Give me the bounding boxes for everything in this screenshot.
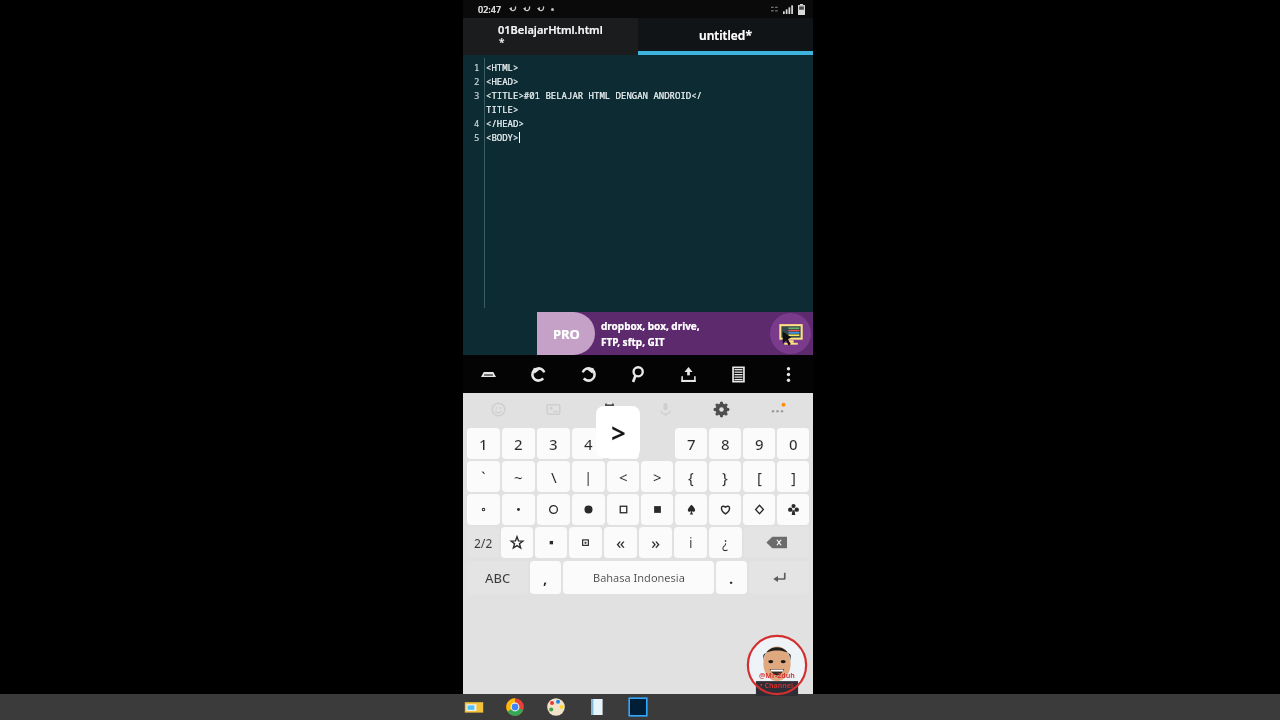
button[interactable]: Undo (513, 355, 563, 393)
button[interactable]: 01BelajarHtml.html (463, 18, 638, 55)
button[interactable]: 9 (743, 428, 775, 459)
button[interactable]: [ (743, 461, 775, 492)
staticText: , (543, 568, 548, 588)
staticText: 2 (474, 75, 480, 87)
button[interactable]: Save (663, 355, 713, 393)
button[interactable]: Symbol raq (639, 527, 672, 558)
button[interactable]: Symbol (743, 494, 775, 525)
staticText: @Mr-2duh (759, 671, 795, 681)
staticText: 2/2 (474, 535, 493, 551)
button[interactable]: ] (777, 461, 809, 492)
button[interactable]: Symbol sq2 (569, 527, 602, 558)
button[interactable]: } (709, 461, 741, 492)
button[interactable]: Symbol laq (604, 527, 637, 558)
button[interactable]: Hide keyboard (463, 355, 513, 393)
button[interactable]: . (716, 561, 747, 594)
button[interactable]: | (572, 461, 605, 492)
staticText: 8 (721, 434, 730, 454)
button[interactable]: PRO (537, 312, 813, 355)
staticText: 0 (789, 434, 798, 454)
button[interactable]: Symbol (675, 494, 707, 525)
button[interactable]: ` (467, 461, 500, 492)
button[interactable]: Symbol (607, 494, 639, 525)
button[interactable]: > (641, 461, 673, 492)
staticText: • Channel (760, 681, 794, 691)
button[interactable]: Symbol (709, 494, 741, 525)
staticText: 3 (549, 434, 558, 454)
button[interactable]: Bahasa Indonesia (563, 561, 714, 594)
staticText: 1 (474, 61, 480, 73)
button[interactable]: More options (749, 393, 805, 425)
button[interactable]: 0 (777, 428, 809, 459)
button[interactable]: untitled* (638, 18, 813, 55)
button[interactable]: 3 (537, 428, 570, 459)
staticText: </HEAD> (486, 117, 524, 129)
staticText: <TITLE>#01 BELAJAR HTML DENGAN ANDROID</ (486, 89, 703, 101)
button[interactable]: Symbol star (501, 527, 533, 558)
staticText: PRO (553, 325, 580, 343)
button[interactable]: 8 (709, 428, 741, 459)
button[interactable]: Symbol (777, 494, 809, 525)
staticText: i (689, 533, 693, 552)
staticText: 01BelajarHtml.html (498, 22, 603, 37)
staticText: <HTML> (486, 61, 519, 73)
staticText: } (722, 467, 728, 487)
button[interactable]: < (607, 461, 639, 492)
staticText: < (619, 467, 628, 487)
button[interactable]: Enter (749, 561, 809, 594)
button[interactable]: 2 (502, 428, 535, 459)
button[interactable]: 1 (467, 428, 500, 459)
button[interactable]: Photoshop (628, 697, 648, 717)
staticText: 02:47 (478, 3, 502, 15)
staticText: ¿ (722, 533, 729, 552)
button[interactable]: ABC (467, 561, 528, 594)
button[interactable]: Symbol i (674, 527, 707, 558)
button[interactable]: File Explorer (464, 697, 484, 717)
button[interactable]: \ (537, 461, 570, 492)
staticText: . (729, 568, 734, 588)
button[interactable]: Clipboard (581, 393, 637, 425)
button[interactable]: Voice input (637, 393, 693, 425)
button[interactable]: Emoji (471, 393, 526, 425)
button[interactable]: Redo (563, 355, 613, 393)
button[interactable]: Stickers (526, 393, 581, 425)
button[interactable]: Symbol iq (709, 527, 742, 558)
staticText: » (651, 531, 661, 554)
staticText: 5 (474, 131, 480, 143)
staticText: ABC (485, 569, 511, 587)
button[interactable]: Symbol (572, 494, 605, 525)
staticText: Bahasa Indonesia (593, 570, 685, 585)
button[interactable]: Symbol (537, 494, 570, 525)
button[interactable]: Notes (587, 697, 607, 717)
staticText: <BODY> (486, 131, 519, 143)
button[interactable]: Keyboard settings (693, 393, 749, 425)
button[interactable]: Search (613, 355, 663, 393)
staticText: > (611, 415, 626, 450)
button[interactable]: ~ (502, 461, 535, 492)
button[interactable]: Paint (546, 697, 566, 717)
button[interactable]: Lines (713, 355, 763, 393)
staticText: « (616, 531, 626, 554)
button[interactable]: Chrome (505, 697, 525, 717)
staticText: 4 (584, 434, 593, 454)
staticText: 7 (687, 434, 696, 454)
button[interactable]: Symbol (641, 494, 673, 525)
button[interactable]: { (675, 461, 707, 492)
button[interactable]: Symbol (502, 494, 535, 525)
button[interactable]: Symbol sq (535, 527, 567, 558)
staticText: 1 (479, 434, 488, 454)
staticText: [ (757, 467, 762, 487)
button[interactable]: 7 (675, 428, 707, 459)
staticText: 5 (619, 434, 628, 454)
button[interactable]: Backspace (744, 527, 809, 558)
button[interactable]: Symbol (467, 494, 500, 525)
button[interactable]: More options (763, 355, 813, 393)
staticText: 2 (514, 434, 523, 454)
staticText: ] (791, 467, 796, 487)
button[interactable]: 4 (572, 428, 605, 459)
staticText: ` (481, 467, 486, 487)
button[interactable]: 5 (607, 428, 639, 459)
button[interactable]: 2/2 (467, 527, 499, 558)
button[interactable]: , (530, 561, 561, 594)
